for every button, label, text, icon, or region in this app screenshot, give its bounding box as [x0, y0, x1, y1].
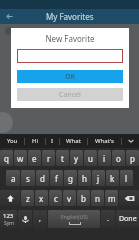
staticText: Cancel [59, 90, 81, 100]
staticText: Done [119, 214, 137, 224]
staticText: You [7, 137, 18, 145]
staticText: z [26, 193, 30, 204]
staticText: t [61, 153, 64, 164]
staticText: d [40, 173, 45, 184]
staticText: u [88, 153, 93, 164]
button[interactable]: Done [116, 210, 139, 228]
staticText: Hi [32, 137, 38, 145]
button[interactable]: OK [17, 70, 123, 83]
staticText: j [97, 173, 100, 184]
staticText: OK [65, 72, 76, 82]
button[interactable]: , [33, 210, 47, 228]
staticText: c [54, 193, 58, 204]
staticText: r [47, 153, 51, 164]
button[interactable]: w [14, 150, 27, 166]
button[interactable]: d [36, 170, 49, 186]
button[interactable]: Space [48, 210, 100, 228]
button[interactable]: f [50, 170, 63, 186]
button[interactable]: a [6, 170, 20, 186]
button[interactable]: Backspace [119, 190, 139, 206]
staticText: , [39, 214, 41, 224]
button[interactable]: z [21, 190, 34, 206]
staticText: k [110, 173, 115, 184]
button[interactable]: What [60, 134, 87, 148]
button[interactable]: v [63, 190, 76, 206]
button[interactable]: l [120, 170, 133, 186]
button[interactable] [17, 49, 123, 63]
button[interactable]: p [126, 150, 139, 166]
button[interactable]: Add favorite [0, 112, 13, 133]
staticText: x [39, 193, 44, 204]
button[interactable]: r [42, 150, 55, 166]
staticText: e [32, 153, 37, 164]
button[interactable]: b [77, 190, 90, 206]
button[interactable]: Hi [25, 134, 45, 148]
staticText: I [51, 137, 54, 145]
button[interactable]: h [78, 170, 91, 186]
button[interactable]: s [21, 170, 35, 186]
button[interactable]: Shift [0, 190, 20, 206]
staticText: n [95, 193, 100, 204]
button[interactable]: o [112, 150, 125, 166]
staticText: English(US) [61, 214, 88, 221]
staticText: Sym [4, 220, 14, 227]
button[interactable]: y [70, 150, 83, 166]
staticText: v [67, 193, 72, 204]
button[interactable]: c [49, 190, 62, 206]
staticText: a [11, 173, 16, 184]
button[interactable]: More suggestions [122, 134, 139, 148]
staticText: q [4, 153, 9, 164]
staticText: . [107, 214, 109, 224]
staticText: w [17, 153, 24, 164]
staticText: New Favorite [17, 33, 123, 44]
button[interactable]: g [64, 170, 77, 186]
button[interactable]: u [84, 150, 97, 166]
staticText: My Favorites [46, 11, 94, 22]
staticText: What's [95, 137, 114, 145]
staticText: l [125, 173, 128, 184]
button[interactable]: i [98, 150, 111, 166]
button[interactable]: 123 [0, 210, 17, 228]
button[interactable]: You [0, 134, 24, 148]
button[interactable]: t [56, 150, 69, 166]
button[interactable]: j [92, 170, 105, 186]
button[interactable]: Cancel [17, 88, 123, 101]
staticText: f [55, 173, 58, 184]
button[interactable]: n [91, 190, 104, 206]
button[interactable]: q [0, 150, 13, 166]
button[interactable]: I [46, 134, 59, 148]
button[interactable]: k [106, 170, 119, 186]
staticText: i [103, 153, 106, 164]
button[interactable]: m [105, 190, 118, 206]
button[interactable]: x [35, 190, 48, 206]
button[interactable]: Back [3, 10, 16, 23]
button[interactable]: e [28, 150, 41, 166]
staticText: s [26, 173, 30, 184]
staticText: Favorite [17, 26, 44, 36]
staticText: p [130, 153, 135, 164]
staticText: m [108, 193, 116, 204]
button[interactable]: . [101, 210, 115, 228]
staticText: y [74, 153, 79, 164]
staticText: What [66, 137, 81, 145]
button[interactable]: What's [88, 134, 121, 148]
staticText: 123 [3, 212, 14, 220]
staticText: h [82, 173, 87, 184]
staticText: b [81, 193, 86, 204]
staticText: o [116, 153, 121, 164]
button[interactable]: Voice input [18, 210, 32, 228]
staticText: g [68, 173, 73, 184]
